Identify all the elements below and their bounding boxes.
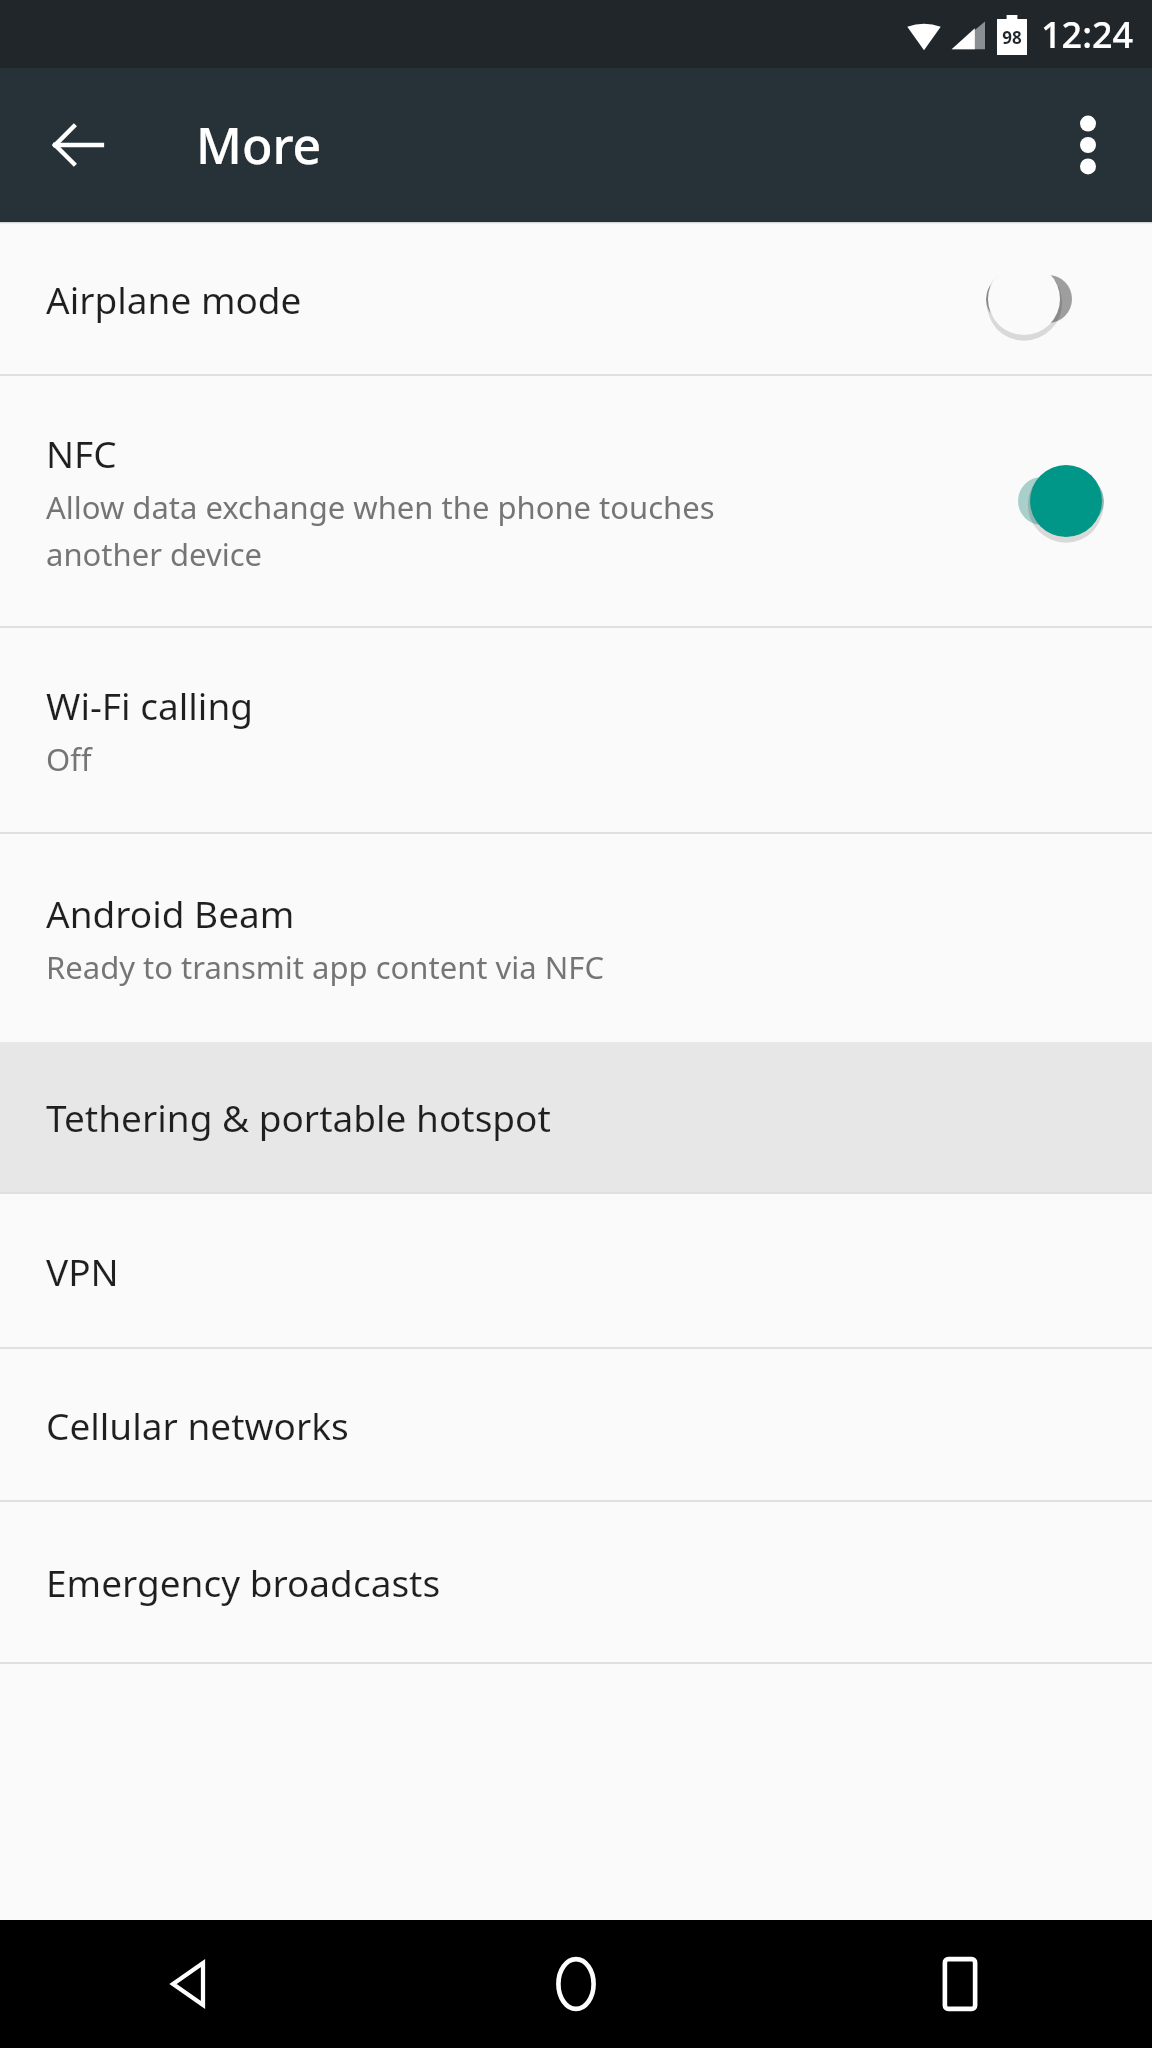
button[interactable]: VPN [0, 1194, 1152, 1347]
button[interactable]: More options [1040, 97, 1136, 193]
staticText: Ready to transmit app content via NFC [46, 946, 604, 988]
button[interactable]: Emergency broadcasts [0, 1502, 1152, 1662]
button[interactable]: Tethering & portable hotspot [0, 1042, 1152, 1192]
staticText: 98 [1002, 26, 1022, 49]
staticText: Tethering & portable hotspot [46, 1092, 551, 1142]
button[interactable]: Android Beam [0, 834, 1152, 1042]
other: Signal [951, 18, 985, 52]
staticText: Emergency broadcasts [46, 1557, 441, 1607]
staticText: Wi-Fi calling [46, 680, 254, 730]
button[interactable]: Recent apps [768, 1920, 1152, 2048]
staticText: Airplane mode [46, 274, 302, 324]
button[interactable]: Cellular networks [0, 1349, 1152, 1500]
button[interactable]: Toggle on [986, 453, 1104, 549]
button[interactable]: NFC [0, 376, 1152, 626]
button[interactable]: Toggle off [986, 251, 1104, 347]
staticText: Off [46, 738, 92, 780]
button[interactable]: Back [0, 1920, 384, 2048]
staticText: Android Beam [46, 888, 295, 938]
button[interactable]: Wi-Fi calling [0, 628, 1152, 832]
button[interactable]: Navigate up [30, 97, 126, 193]
staticText: VPN [46, 1246, 119, 1296]
staticText: 12:24 [1041, 10, 1134, 59]
button[interactable]: Airplane mode [0, 224, 1152, 374]
staticText: Allow data exchange when the phone touch… [46, 486, 715, 575]
staticText: Cellular networks [46, 1400, 349, 1450]
staticText: NFC [46, 428, 117, 478]
staticText: More [196, 111, 322, 179]
other: Battery 98% [997, 15, 1027, 55]
button[interactable]: Home [384, 1920, 768, 2048]
other: Wi-Fi [905, 18, 943, 52]
